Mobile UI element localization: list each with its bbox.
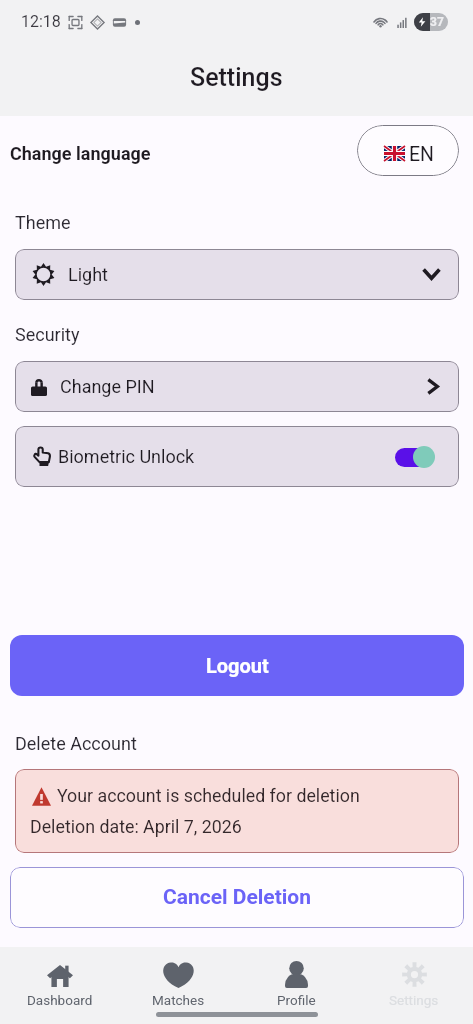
other: Open change PIN — [428, 379, 439, 394]
staticText: Logout — [206, 654, 269, 677]
button[interactable]: Cancel Deletion — [10, 867, 464, 928]
staticText: Profile — [277, 992, 316, 1008]
staticText: Settings — [190, 63, 283, 92]
staticText: Change PIN — [60, 376, 155, 397]
staticText: Your account is scheduled for deletion — [57, 785, 360, 806]
staticText: Light — [68, 264, 108, 285]
button[interactable]: Change PIN — [15, 361, 459, 412]
staticText: Theme — [15, 212, 71, 233]
staticText: Delete Account — [15, 733, 137, 754]
button[interactable]: Profile — [237, 947, 355, 1024]
button[interactable]: Light — [15, 249, 459, 300]
other: Biometric unlock toggle — [395, 445, 435, 469]
staticText: EN — [409, 143, 434, 166]
staticText: Security — [15, 324, 80, 345]
staticText: Dashboard — [27, 992, 93, 1008]
staticText: 37 — [430, 15, 444, 29]
button[interactable]: Settings — [355, 947, 473, 1024]
staticText: Matches — [152, 992, 205, 1008]
staticText: Biometric Unlock — [58, 446, 195, 467]
button[interactable]: EN — [357, 125, 459, 176]
staticText: Cancel Deletion — [163, 885, 311, 910]
staticText: Change language — [10, 143, 151, 164]
button[interactable]: Matches — [119, 947, 237, 1024]
button[interactable]: Dashboard — [0, 947, 119, 1024]
other: Expand theme — [423, 269, 440, 280]
staticText: Deletion date: April 7, 2026 — [30, 816, 242, 837]
button[interactable]: Logout — [10, 635, 464, 696]
staticText: Settings — [389, 992, 439, 1008]
staticText: 12:18 — [21, 12, 61, 31]
button[interactable]: Biometric Unlock — [15, 426, 459, 487]
